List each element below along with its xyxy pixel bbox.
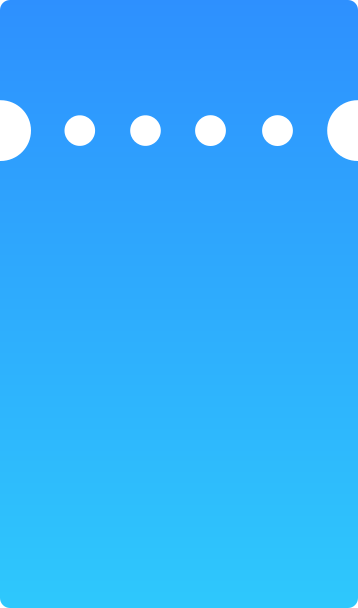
button[interactable]: Page 3	[195, 115, 226, 146]
button[interactable]: Page 4	[262, 115, 293, 146]
button[interactable]: Next page	[327, 100, 358, 161]
button[interactable]: Previous page	[0, 100, 31, 161]
button[interactable]: Page 2	[130, 115, 161, 146]
button[interactable]: Page 1	[64, 115, 95, 146]
